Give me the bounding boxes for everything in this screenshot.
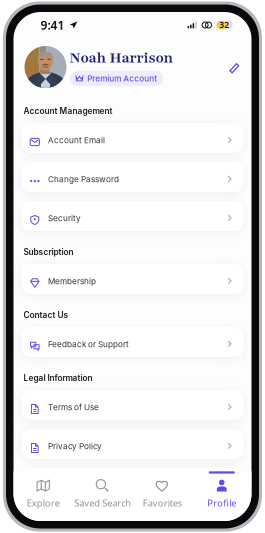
staticText: Profile [207,497,236,509]
staticText: 32 [219,20,229,30]
staticText: Change Password [48,174,119,184]
staticText: Membership [48,276,96,286]
button[interactable]: Feedback or Support [21,327,243,357]
staticText: Account Email [48,135,105,145]
button[interactable]: Saved Search [73,471,132,509]
staticText: 9:41 [40,17,64,33]
button[interactable]: Explore [13,471,73,509]
staticText: Contact Us [23,310,68,320]
staticText: Account Management [23,106,112,116]
button[interactable]: Membership [21,264,243,294]
staticText: Feedback or Support [48,339,129,349]
staticText: Legal Information [23,373,92,383]
staticText: Licenses [48,480,83,490]
button[interactable]: Privacy Policy [21,429,243,459]
button[interactable]: Favorites [132,471,192,509]
button[interactable]: Licenses [21,468,243,498]
staticText: Explore [27,497,60,509]
staticText: Noah Harrison [69,48,173,68]
staticText: Saved Search [74,497,131,509]
button[interactable]: Account Email [21,123,243,153]
staticText: Security [48,213,81,223]
staticText: Terms of Use [48,402,99,412]
staticText: Subscription [23,247,73,257]
staticText: Premium Account [87,74,157,83]
button[interactable]: Profile [192,471,251,509]
button[interactable]: Change Password [21,162,243,192]
staticText: Favorites [143,497,182,509]
button[interactable]: Terms of Use [21,390,243,420]
staticText: Privacy Policy [48,441,102,451]
button[interactable]: Security [21,201,243,231]
button[interactable]: Edit profile [224,55,244,78]
